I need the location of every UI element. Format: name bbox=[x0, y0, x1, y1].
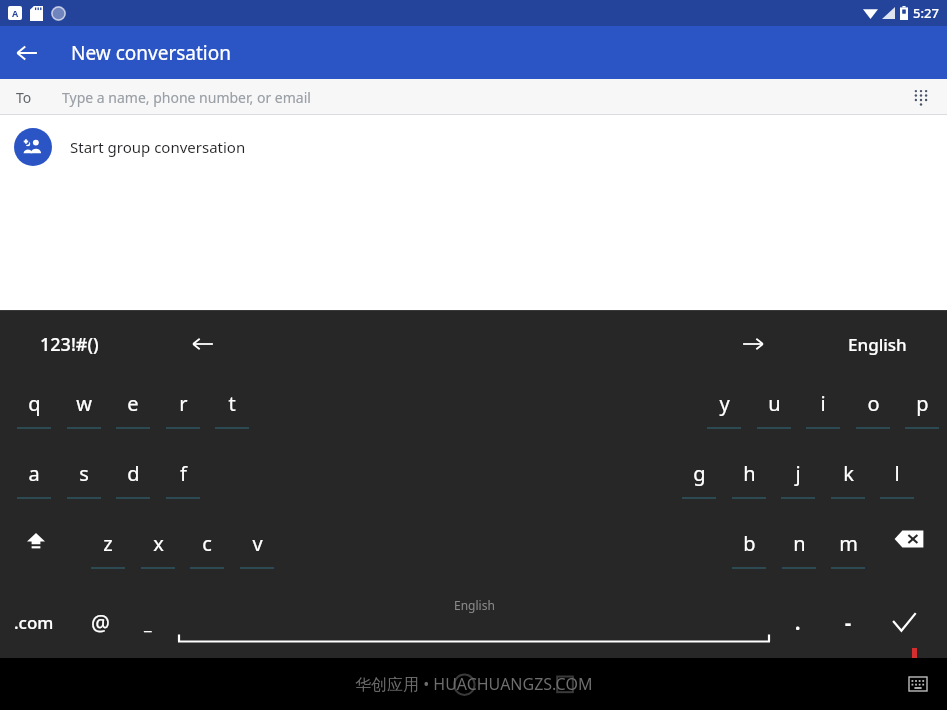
staticText: d bbox=[127, 460, 140, 487]
button[interactable]: Switch keyboard bbox=[901, 667, 935, 701]
button[interactable]: h bbox=[727, 447, 771, 505]
button[interactable]: Space bbox=[178, 593, 770, 647]
button[interactable]: x bbox=[136, 517, 180, 575]
staticText: n bbox=[793, 530, 806, 557]
staticText: Start group conversation bbox=[70, 137, 246, 157]
button[interactable]: o bbox=[851, 377, 895, 435]
button[interactable]: Done bbox=[883, 602, 925, 644]
staticText: _ bbox=[144, 612, 152, 635]
button[interactable]: t bbox=[210, 377, 254, 435]
staticText: To bbox=[16, 88, 32, 107]
staticText: q bbox=[28, 390, 41, 417]
staticText: s bbox=[79, 460, 89, 487]
staticText: p bbox=[916, 390, 929, 417]
button[interactable]: z bbox=[86, 517, 130, 575]
button[interactable]: a bbox=[12, 447, 56, 505]
button[interactable]: p bbox=[900, 377, 944, 435]
staticText: x bbox=[153, 530, 164, 557]
staticText: m bbox=[839, 530, 858, 557]
button[interactable]: i bbox=[801, 377, 845, 435]
staticText: z bbox=[103, 530, 113, 557]
button[interactable]: Move cursor left bbox=[182, 323, 224, 365]
button[interactable]: - bbox=[831, 606, 865, 640]
staticText: .com bbox=[14, 611, 54, 634]
staticText: 123!#() bbox=[40, 332, 99, 357]
button[interactable]: @ bbox=[80, 603, 120, 643]
staticText: - bbox=[845, 610, 852, 636]
staticText: e bbox=[127, 390, 139, 417]
button[interactable]: k bbox=[826, 447, 870, 505]
staticText: o bbox=[867, 390, 880, 417]
staticText: 5:27 bbox=[913, 4, 939, 22]
button[interactable]: y bbox=[702, 377, 746, 435]
button[interactable]: r bbox=[161, 377, 205, 435]
staticText: t bbox=[228, 390, 236, 417]
staticText: @ bbox=[91, 609, 110, 638]
staticText: v bbox=[252, 530, 263, 557]
button[interactable]: Dialpad bbox=[903, 79, 939, 115]
staticText: l bbox=[894, 460, 900, 487]
button[interactable]: Shift bbox=[16, 521, 56, 561]
button[interactable]: _ bbox=[130, 605, 166, 641]
staticText: 华创应用 • HUACHUANGZS.COM bbox=[355, 673, 593, 695]
staticText: u bbox=[768, 390, 781, 417]
staticText: k bbox=[843, 460, 854, 487]
staticText: A bbox=[12, 7, 19, 19]
button[interactable]: b bbox=[727, 517, 771, 575]
staticText: h bbox=[743, 460, 756, 487]
button[interactable]: e bbox=[111, 377, 155, 435]
button[interactable]: v bbox=[235, 517, 279, 575]
button[interactable]: q bbox=[12, 377, 56, 435]
staticText: g bbox=[693, 460, 706, 487]
staticText: c bbox=[202, 530, 212, 557]
button[interactable]: c bbox=[185, 517, 229, 575]
button[interactable]: l bbox=[875, 447, 919, 505]
staticText: b bbox=[743, 530, 756, 557]
staticText: . bbox=[795, 610, 801, 636]
staticText: English bbox=[454, 597, 495, 613]
button[interactable]: n bbox=[777, 517, 821, 575]
button[interactable]: .com bbox=[14, 611, 54, 634]
button[interactable]: . bbox=[781, 606, 815, 640]
staticText: r bbox=[179, 390, 188, 417]
staticText: j bbox=[795, 460, 801, 487]
button[interactable]: English bbox=[848, 333, 907, 356]
staticText: English bbox=[848, 333, 907, 356]
button[interactable]: Back bbox=[0, 26, 53, 79]
staticText: a bbox=[28, 460, 40, 487]
button[interactable]: Backspace bbox=[888, 521, 930, 557]
button[interactable]: d bbox=[111, 447, 155, 505]
button[interactable]: j bbox=[776, 447, 820, 505]
button[interactable]: s bbox=[62, 447, 106, 505]
button[interactable]: 123!#() bbox=[40, 332, 99, 357]
staticText: i bbox=[820, 390, 826, 417]
staticText: y bbox=[719, 390, 730, 417]
button[interactable]: m bbox=[826, 517, 870, 575]
button[interactable]: w bbox=[62, 377, 106, 435]
button[interactable]: Move cursor right bbox=[732, 323, 774, 365]
staticText: w bbox=[76, 390, 92, 417]
staticText: Type a name, phone number, or email bbox=[62, 88, 311, 107]
button[interactable]: u bbox=[752, 377, 796, 435]
button[interactable]: f bbox=[161, 447, 205, 505]
staticText: New conversation bbox=[71, 40, 231, 66]
button[interactable]: g bbox=[677, 447, 721, 505]
staticText: f bbox=[180, 460, 187, 487]
button[interactable]: Start group conversation bbox=[0, 115, 947, 179]
